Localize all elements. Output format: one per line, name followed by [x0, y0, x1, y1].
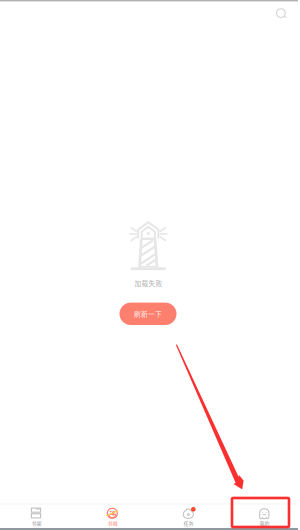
button[interactable]: 任务 [151, 505, 227, 527]
button[interactable]: 我的 [227, 505, 300, 527]
staticText: 书架 [32, 519, 42, 527]
button[interactable]: 书架 [0, 505, 75, 527]
staticText: 书城 [108, 519, 118, 527]
button[interactable]: 书城 [75, 505, 151, 527]
staticText: 任务 [184, 519, 194, 527]
staticText: 加载失败 [134, 278, 162, 288]
staticText: 我的 [260, 519, 270, 527]
button[interactable]: 刷新一下 [119, 303, 176, 325]
staticText: 刷新一下 [134, 309, 162, 319]
button[interactable]: Search [270, 2, 296, 26]
